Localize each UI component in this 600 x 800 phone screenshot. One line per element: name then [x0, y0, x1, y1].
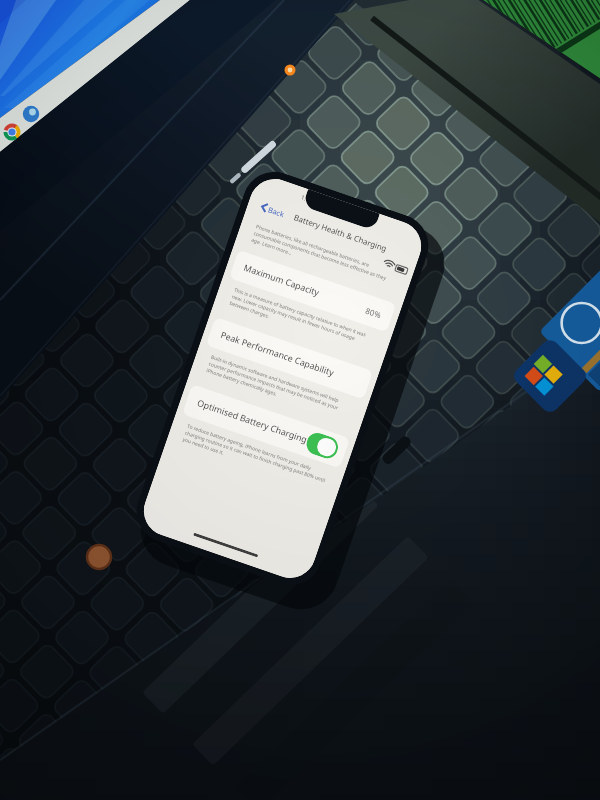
button[interactable]: Peak Performance Capability: [206, 317, 373, 399]
staticText: Battery Health & Charging: [292, 212, 388, 255]
other: Back: [259, 201, 269, 214]
staticText: Peak Performance Capability: [219, 329, 335, 379]
staticText: To reduce battery ageing, iPhone learns …: [182, 423, 329, 491]
staticText: Maximum Capacity: [242, 262, 322, 299]
button[interactable]: Maximum Capacity: [229, 250, 396, 332]
staticText: Optimised Battery Charging: [196, 397, 309, 446]
staticText: 80%: [364, 305, 383, 320]
button[interactable]: Back: [255, 194, 411, 267]
staticText: Phone batteries, like all rechargeable b…: [250, 223, 398, 292]
button[interactable]: Optimised Battery Charging: [182, 384, 350, 468]
button[interactable]: Optimised Battery Charging toggle: [304, 430, 341, 461]
staticText: Back: [267, 204, 286, 219]
staticText: Built-in dynamic software and hardware s…: [205, 354, 353, 422]
button[interactable]: Back: [257, 198, 289, 222]
staticText: This is a measure of battery capacity re…: [228, 287, 376, 355]
staticText: 1:18: [300, 193, 314, 205]
